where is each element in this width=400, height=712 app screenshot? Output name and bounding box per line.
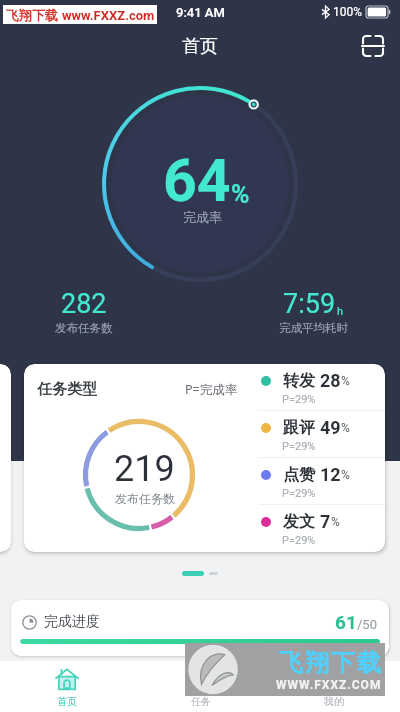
staticText: % — [341, 421, 350, 435]
staticText: 282 — [61, 288, 107, 320]
staticText: % — [341, 468, 350, 482]
staticText: 点赞 — [283, 465, 315, 485]
staticText: 28 — [320, 370, 341, 391]
staticText: P=29% — [282, 440, 316, 453]
staticText: 跟评 — [283, 418, 315, 438]
staticText: 发布任务数 — [55, 321, 113, 335]
staticText: % — [341, 374, 350, 388]
staticText: 9:41 AM — [176, 5, 225, 20]
staticText: 完成进度 — [44, 613, 100, 631]
staticText: 转发 — [283, 371, 315, 391]
staticText: 首页 — [57, 695, 77, 708]
button[interactable]: Scan QR code — [362, 35, 384, 57]
staticText: 7 — [320, 511, 331, 532]
staticText: P=29% — [282, 534, 316, 547]
button[interactable]: 完成进度 — [11, 600, 389, 656]
staticText: 61 — [335, 611, 357, 633]
staticText: www.FXXZ.com — [62, 8, 155, 23]
staticText: /50 — [357, 617, 377, 632]
button[interactable]: 发文 — [249, 505, 385, 552]
staticText: 发布任务数 — [115, 491, 175, 506]
staticText: % — [331, 515, 340, 529]
button[interactable]: 任务类型 — [24, 364, 385, 552]
button[interactable]: 首页 — [0, 661, 134, 712]
staticText: 飞翔下载 — [278, 648, 382, 678]
staticText: 49 — [320, 417, 341, 438]
staticText: P=29% — [282, 393, 316, 406]
staticText: 首页 — [182, 35, 218, 58]
button[interactable]: 我的 — [267, 661, 400, 712]
staticText: 12 — [320, 464, 341, 485]
staticText: 64 — [163, 146, 231, 215]
button[interactable]: 点赞 — [249, 458, 385, 505]
button[interactable]: 任务 — [134, 661, 267, 712]
staticText: 发文 — [283, 512, 315, 532]
staticText: % — [231, 180, 250, 209]
staticText: 100% — [333, 5, 363, 19]
staticText: 7:59 — [283, 288, 336, 320]
button[interactable]: 转发 — [249, 364, 385, 411]
staticText: P=完成率 — [185, 381, 238, 398]
staticText: 我的 — [324, 695, 344, 708]
button[interactable]: 跟评 — [249, 411, 385, 458]
staticText: 完成率 — [183, 209, 222, 225]
staticText: 完成平均耗时 — [279, 321, 348, 335]
staticText: 219 — [114, 448, 175, 490]
staticText: 飞翔下载 — [6, 7, 58, 23]
staticText: h — [337, 305, 344, 318]
staticText: 任务 — [191, 695, 211, 708]
staticText: 任务类型 — [37, 380, 97, 399]
staticText: WWW.FXXZ.COM — [276, 678, 382, 692]
staticText: P=29% — [282, 487, 316, 500]
